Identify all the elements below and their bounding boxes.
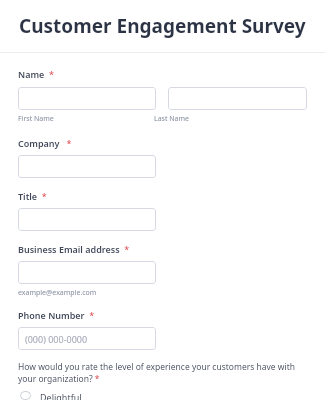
staticText: (000) 000-0000 (25, 333, 88, 345)
button[interactable]: Delightful (0, 391, 325, 400)
staticText: Last Name (154, 114, 190, 124)
button[interactable]: Phone Number (18, 327, 156, 350)
button[interactable]: Business Email address (18, 261, 156, 284)
button[interactable]: Title (18, 208, 156, 231)
staticText: How would you rate the level of experien… (18, 361, 313, 385)
button[interactable]: Company (18, 155, 156, 178)
staticText: Company * (18, 137, 72, 149)
staticText: Customer Engagement Survey (19, 13, 306, 39)
staticText: Title * (18, 190, 47, 202)
staticText: First Name (18, 114, 54, 124)
staticText: Delightful (40, 391, 82, 400)
button[interactable]: First Name (18, 87, 156, 110)
staticText: Business Email address * (18, 243, 130, 255)
staticText: example@example.com (18, 288, 97, 298)
button[interactable]: Last Name (168, 87, 307, 110)
staticText: Name * (18, 68, 54, 80)
staticText: Phone Number * (18, 309, 95, 321)
